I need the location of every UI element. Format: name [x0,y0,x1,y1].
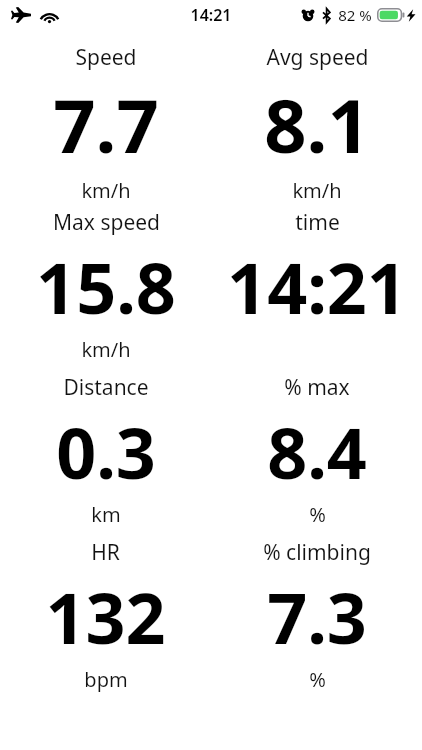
staticText: bpm [84,666,128,693]
staticText: 7.3 [267,569,367,664]
button[interactable]: Max speed [36,208,176,363]
staticText: time [295,208,340,237]
staticText: 8.4 [267,404,367,499]
staticText: % [309,666,326,693]
button[interactable]: HR [45,538,166,693]
button[interactable]: % climbing [263,538,371,693]
button[interactable]: % max [267,373,367,528]
other: Alarm set [301,8,315,22]
other: Bluetooth [322,8,332,23]
staticText: km/h [81,177,131,204]
staticText: 15.8 [36,239,176,334]
staticText: km/h [292,177,342,204]
button[interactable]: Distance [56,373,156,528]
button[interactable]: time [227,208,407,334]
button[interactable]: Avg speed [264,43,370,204]
other: Charging [406,9,416,22]
staticText: 14:21 [190,4,232,26]
staticText: 7.7 [53,74,159,175]
button[interactable]: Speed [53,43,159,204]
staticText: km/h [81,336,131,363]
staticText: % max [284,373,350,402]
staticText: Distance [63,373,149,402]
staticText: HR [91,538,120,567]
staticText: 14:21 [227,239,407,334]
other: Battery 82 percent [377,8,405,22]
staticText: 82 % [338,5,372,25]
staticText: % climbing [263,538,371,567]
staticText: Speed [75,43,137,72]
staticText: 8.1 [264,74,370,175]
staticText: Avg speed [266,43,369,72]
other: Airplane mode [11,7,31,24]
staticText: Max speed [53,208,160,237]
other: Wi-Fi [40,9,59,23]
staticText: km [91,501,121,528]
staticText: % [309,501,326,528]
staticText: 132 [45,569,166,664]
staticText: 0.3 [56,404,156,499]
